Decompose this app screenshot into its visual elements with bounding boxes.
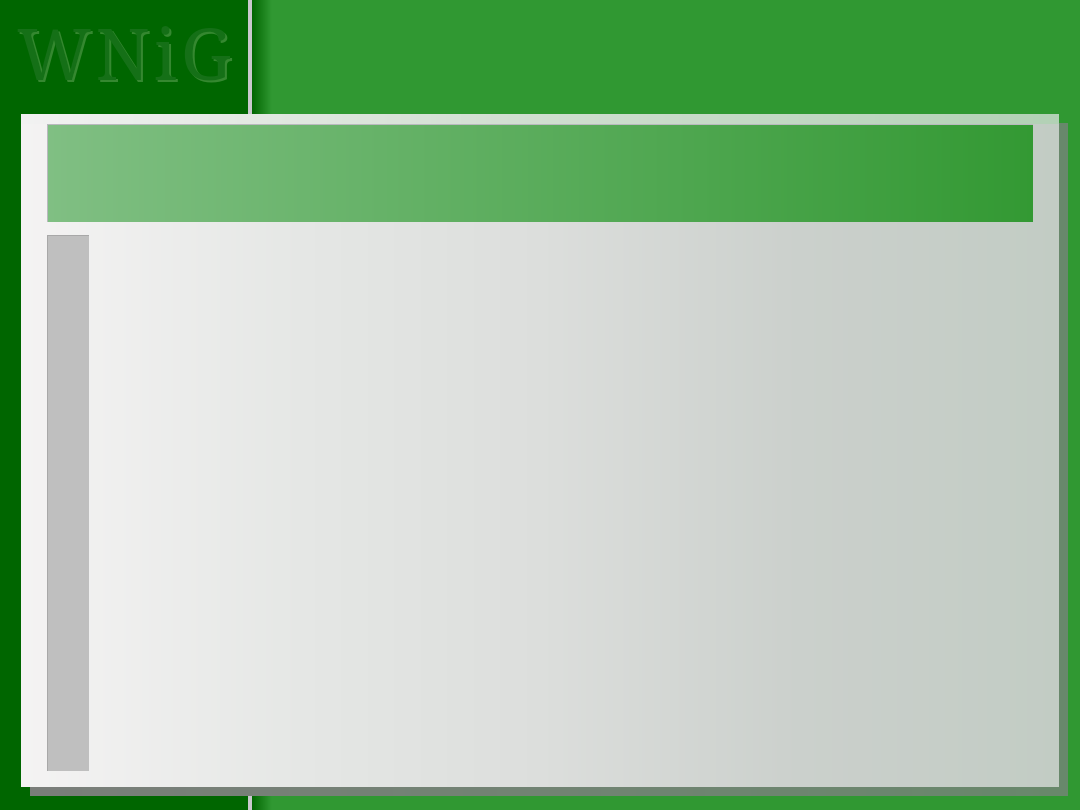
button[interactable]: WNiG home: [17, 4, 236, 101]
staticText: WNiG: [19, 6, 238, 103]
staticText: WNiG: [17, 4, 236, 101]
button[interactable]: Content placeholder: [47, 235, 89, 771]
button[interactable]: Title placeholder: [47, 124, 1033, 222]
